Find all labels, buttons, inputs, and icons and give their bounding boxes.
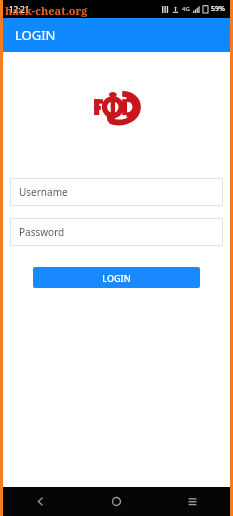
staticText: 59% xyxy=(211,4,225,14)
staticText: Username xyxy=(19,185,68,199)
staticText: LOGIN xyxy=(102,272,131,284)
button[interactable]: Back xyxy=(3,487,78,516)
staticText: 12:21 xyxy=(9,4,30,15)
staticText: 4G xyxy=(182,5,190,13)
staticText: LOGIN xyxy=(15,26,56,44)
button[interactable]: Username xyxy=(10,178,223,206)
button[interactable]: Home xyxy=(78,487,154,516)
staticText: hack-cheat.org xyxy=(5,3,88,18)
button[interactable]: Recent apps xyxy=(154,487,230,516)
staticText: Password xyxy=(19,225,65,239)
button[interactable]: LOGIN xyxy=(33,267,200,288)
button[interactable]: Password xyxy=(10,218,223,246)
